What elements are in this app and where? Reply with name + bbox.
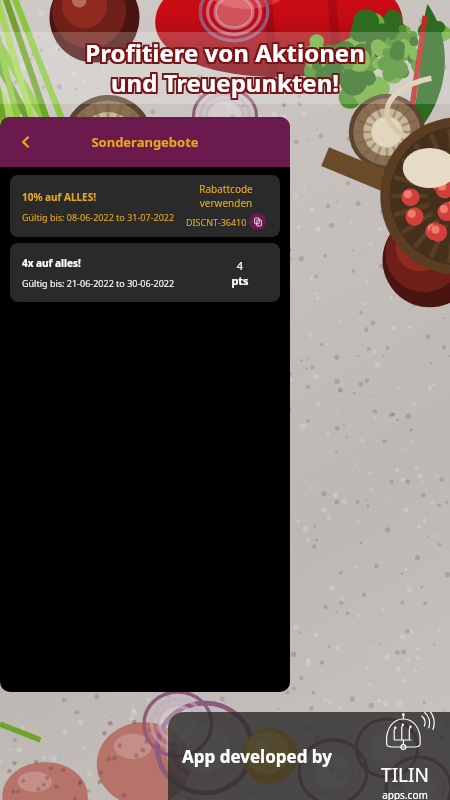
staticText: Profitiere von Aktionen und Treuepunkten… [87, 36, 367, 99]
staticText: TILIN [366, 762, 444, 788]
staticText: 10% auf ALLES! [22, 190, 97, 204]
staticText: Profitiere von Aktionen und Treuepunkten… [85, 36, 365, 99]
button[interactable]: Code kopieren [249, 213, 266, 230]
staticText: Profitiere von Aktionen und Treuepunkten… [87, 38, 367, 101]
staticText: DISCNT-36410 [186, 216, 247, 228]
button[interactable]: 10% auf ALLES! [10, 175, 280, 237]
staticText: App developed by [182, 745, 366, 768]
staticText: Profitiere von Aktionen und Treuepunkten… [87, 34, 367, 97]
staticText: Profitiere von Aktionen und Treuepunkten… [83, 38, 363, 101]
button[interactable]: 4x auf alles! [10, 243, 280, 302]
staticText: Gültig bis: 08-06-2022 to 31-07-2022 [22, 211, 175, 223]
staticText: Gültig bis: 21-06-2022 to 30-06-2022 [22, 277, 175, 289]
staticText: Profitiere von Aktionen und Treuepunkten… [83, 34, 363, 97]
staticText: 4x auf alles! [22, 256, 81, 270]
button[interactable]: Zurück [8, 124, 44, 160]
staticText: pts [212, 273, 268, 288]
staticText: Rabattcode [184, 182, 268, 196]
staticText: Sonderangebote [91, 133, 199, 151]
staticText: Profitiere von Aktionen und Treuepunkten… [85, 34, 365, 97]
staticText: 4 [212, 258, 268, 273]
staticText: Profitiere von Aktionen und Treuepunkten… [85, 38, 365, 101]
staticText: verwenden [184, 196, 268, 210]
staticText: apps.com [366, 788, 444, 800]
staticText: Profitiere von Aktionen und Treuepunkten… [83, 36, 363, 99]
